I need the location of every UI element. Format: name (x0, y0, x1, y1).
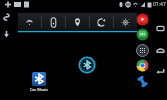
button[interactable]: Sync (90, 13, 113, 31)
button[interactable]: Wi-Fi (18, 13, 41, 31)
button[interactable]: Messages (136, 28, 149, 41)
button[interactable]: Brightness (114, 13, 137, 31)
button[interactable]: Chrome (136, 59, 149, 72)
button[interactable]: Bluetooth connect (78, 56, 96, 74)
button[interactable]: YouTube (136, 13, 149, 26)
button[interactable]: Vibrate (42, 13, 65, 31)
staticText: 01:47 (153, 1, 166, 8)
button[interactable]: Apps (136, 44, 149, 57)
button[interactable]: Phone (136, 75, 149, 88)
staticText: Car Music Connec.. (24, 87, 54, 92)
button[interactable]: Recents (155, 23, 166, 34)
button[interactable]: Back (155, 66, 166, 77)
button[interactable]: Car Music Connec.. (24, 72, 54, 92)
button[interactable]: Home (155, 45, 166, 56)
button[interactable]: Location (66, 13, 89, 31)
